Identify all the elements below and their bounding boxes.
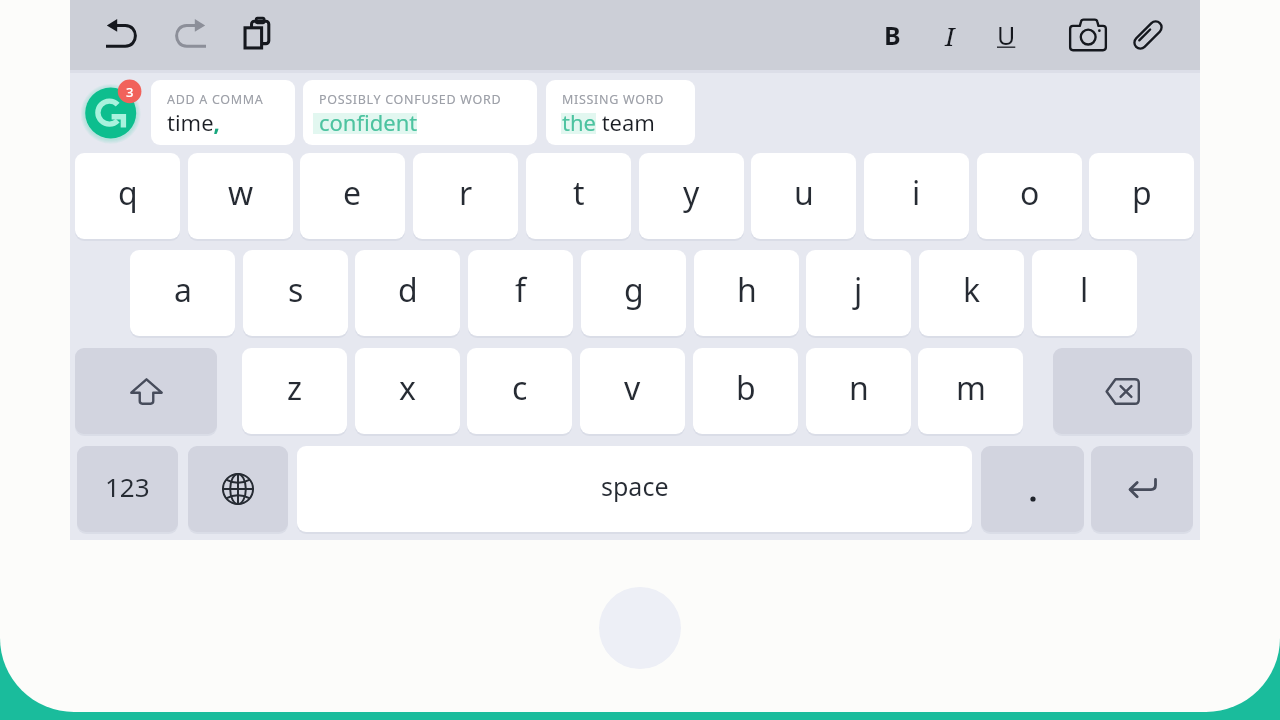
button[interactable]: y	[639, 153, 744, 239]
staticText: I	[945, 18, 955, 53]
button[interactable]: Enter	[1091, 446, 1193, 532]
staticText: a	[174, 268, 192, 312]
staticText: s	[288, 268, 304, 312]
staticText: MISSING WORD	[562, 91, 664, 108]
button[interactable]: k	[919, 250, 1024, 336]
button[interactable]: Undo	[87, 0, 157, 70]
staticText: ADD A COMMA	[167, 91, 264, 108]
button[interactable]: Camera	[1053, 0, 1123, 70]
button[interactable]: d	[355, 250, 460, 336]
button[interactable]: m	[918, 348, 1023, 434]
button[interactable]: Bold	[857, 0, 927, 70]
staticText: f	[515, 268, 527, 312]
button[interactable]: s	[243, 250, 348, 336]
staticText: t	[573, 171, 585, 215]
staticText: 3	[126, 83, 134, 101]
button[interactable]: h	[694, 250, 799, 336]
button[interactable]: Attach	[1113, 0, 1183, 70]
staticText: time,	[167, 107, 220, 137]
staticText: 123	[105, 469, 150, 504]
button[interactable]: Shift	[75, 348, 217, 434]
staticText: B	[884, 18, 901, 52]
staticText: POSSIBLY CONFUSED WORD	[319, 91, 502, 108]
button[interactable]: j	[806, 250, 911, 336]
button[interactable]: v	[580, 348, 685, 434]
button[interactable]: Period	[981, 446, 1084, 532]
button[interactable]: w	[188, 153, 293, 239]
button[interactable]: a	[130, 250, 235, 336]
button[interactable]: Redo	[155, 0, 225, 70]
staticText: i	[912, 171, 921, 215]
button[interactable]: Italic	[915, 0, 985, 70]
staticText: confident	[319, 107, 418, 137]
button[interactable]: t	[526, 153, 631, 239]
staticText: h	[737, 268, 757, 312]
staticText: v	[624, 366, 641, 410]
staticText: g	[624, 268, 644, 312]
staticText: z	[287, 366, 303, 410]
staticText: p	[1132, 171, 1152, 215]
staticText: r	[459, 171, 473, 215]
button[interactable]: Copy	[223, 0, 293, 70]
staticText: u	[794, 171, 814, 215]
button[interactable]: 123	[77, 446, 178, 532]
button[interactable]: n	[806, 348, 911, 434]
button[interactable]: space	[297, 446, 972, 532]
staticText: b	[736, 366, 756, 410]
button[interactable]: Underline	[971, 0, 1041, 70]
button[interactable]: x	[355, 348, 460, 434]
staticText: q	[118, 171, 138, 215]
staticText: e	[343, 171, 362, 215]
button[interactable]: i	[864, 153, 969, 239]
button[interactable]: l	[1032, 250, 1137, 336]
staticText: w	[228, 171, 254, 215]
staticText: n	[849, 366, 869, 410]
button[interactable]: u	[751, 153, 856, 239]
staticText: x	[399, 366, 416, 410]
button[interactable]: z	[242, 348, 347, 434]
staticText: l	[1080, 268, 1089, 312]
staticText: m	[956, 366, 986, 410]
staticText: d	[398, 268, 418, 312]
button[interactable]: g	[581, 250, 686, 336]
button[interactable]: POSSIBLY CONFUSED WORD	[303, 80, 537, 145]
staticText: y	[683, 171, 700, 215]
staticText: U	[997, 18, 1016, 52]
button[interactable]: Switch language	[188, 446, 288, 532]
button[interactable]: Backspace	[1053, 348, 1192, 434]
staticText: space	[601, 469, 669, 503]
button[interactable]: o	[977, 153, 1082, 239]
staticText: the team	[562, 107, 655, 137]
button[interactable]: e	[300, 153, 405, 239]
staticText: j	[854, 268, 863, 312]
button[interactable]: c	[467, 348, 572, 434]
button[interactable]: b	[693, 348, 798, 434]
staticText: k	[963, 268, 981, 312]
button[interactable]: MISSING WORD	[546, 80, 695, 145]
button[interactable]: q	[75, 153, 180, 239]
button[interactable]: f	[468, 250, 573, 336]
button[interactable]: p	[1089, 153, 1194, 239]
staticText: c	[512, 366, 528, 410]
button[interactable]: Grammarly suggestions	[78, 77, 144, 143]
button[interactable]: r	[413, 153, 518, 239]
button[interactable]: ADD A COMMA	[151, 80, 295, 145]
staticText: o	[1020, 171, 1040, 215]
